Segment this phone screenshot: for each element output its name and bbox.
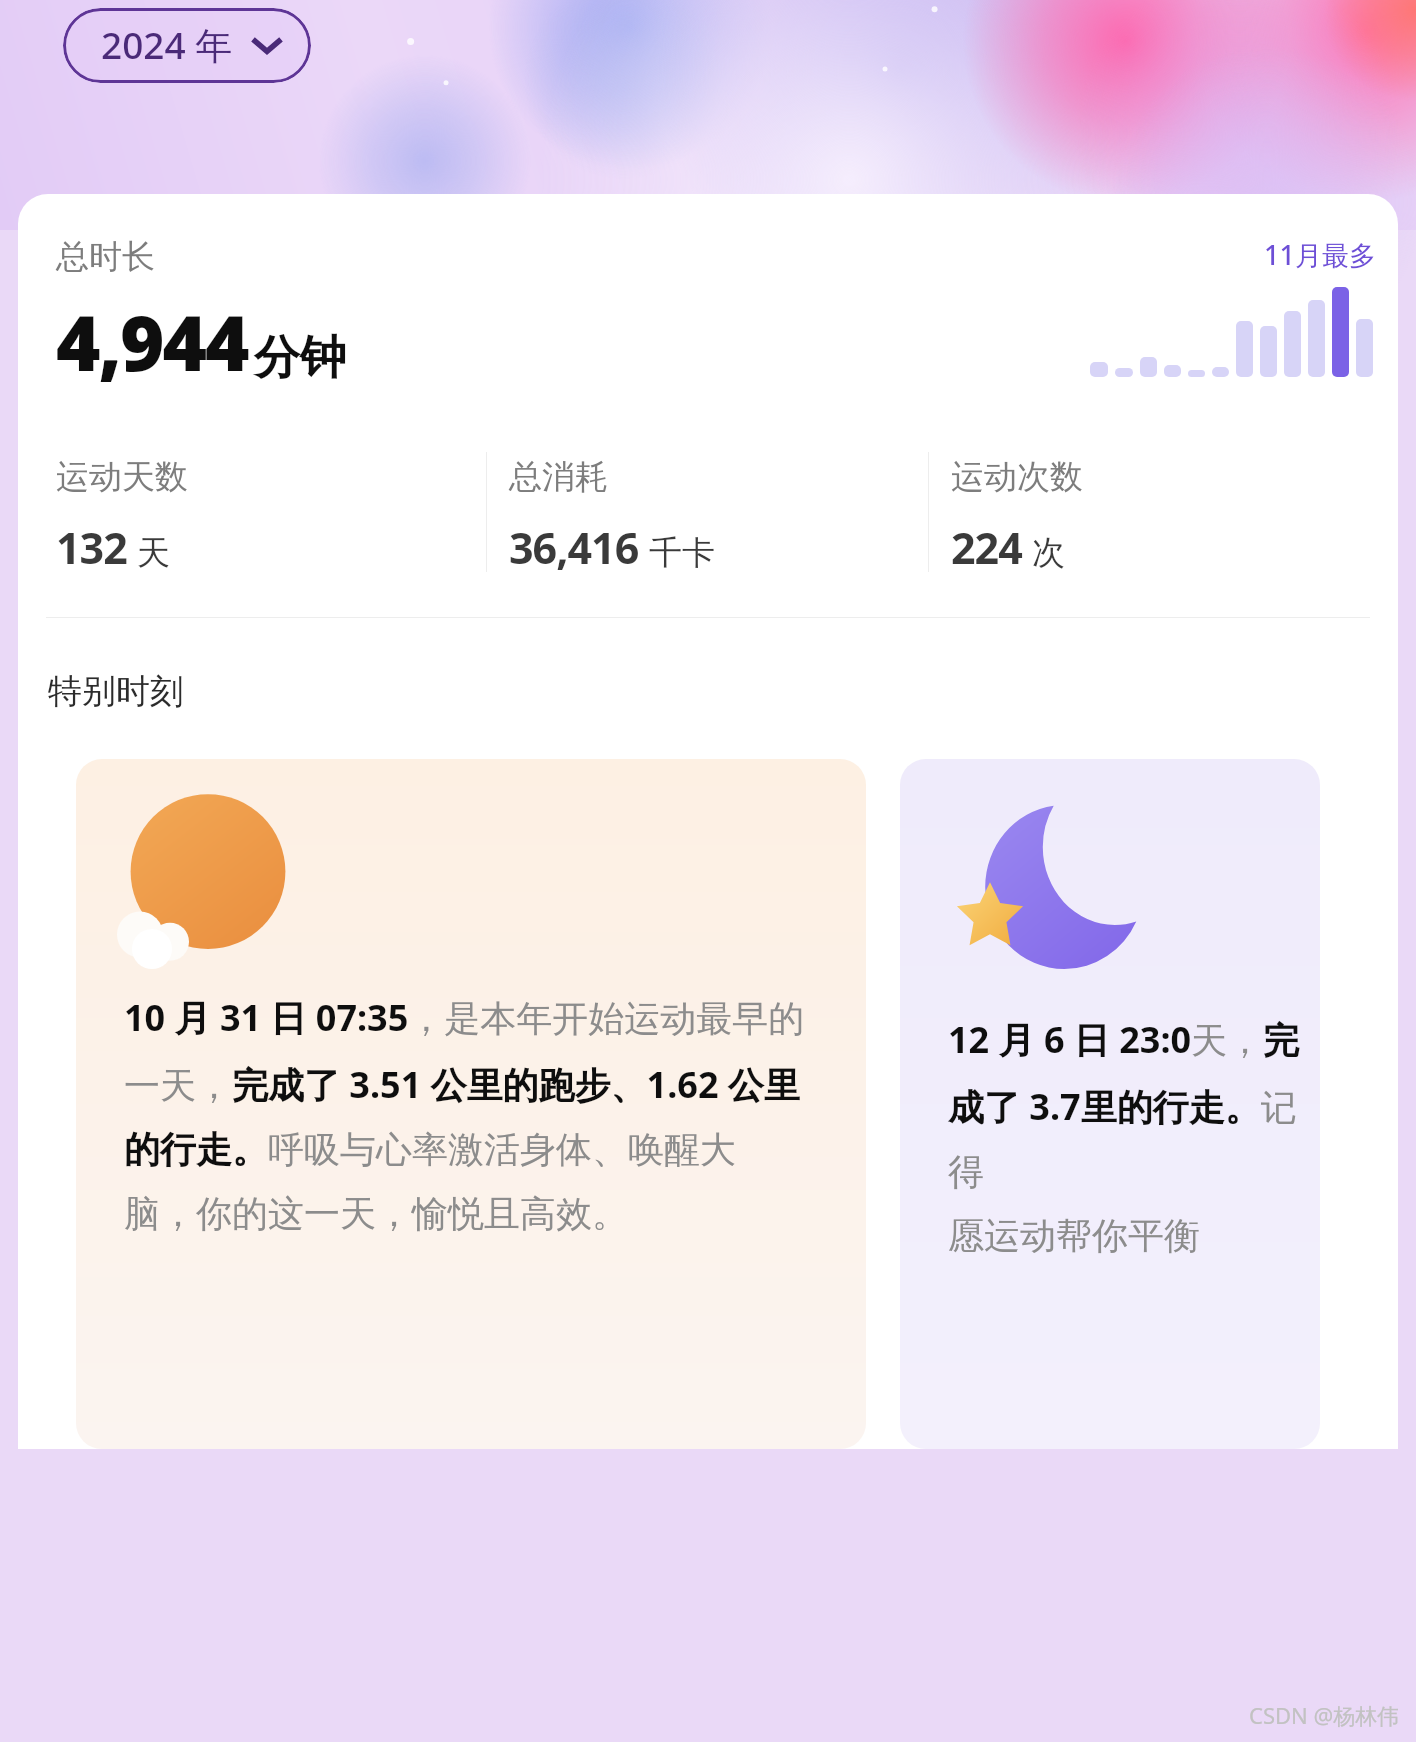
staticText: 天 <box>137 532 170 574</box>
staticText: 10 月 31 日 07:35，是本年开始运动最早的一天，完成了 3.51 公里… <box>124 993 806 1236</box>
staticText: 224 <box>951 518 1022 577</box>
staticText: 分钟 <box>254 329 346 387</box>
staticText: 运动天数 <box>56 456 188 498</box>
staticText: 36,416 <box>509 518 639 577</box>
staticText: 千卡 <box>649 532 715 574</box>
button[interactable]: 运动天数 <box>46 452 486 577</box>
button[interactable]: 10 月 31 日 07:35，是本年开始运动最早的一天，完成了 3.51 公里… <box>76 759 866 1449</box>
staticText: 12 月 6 日 23:0天，完成了 3.7里的行走。记得 愿运动帮你平衡 <box>948 1015 1320 1258</box>
staticText: 总时长 <box>56 236 155 278</box>
staticText: 运动次数 <box>951 456 1083 498</box>
button[interactable]: 总消耗 <box>487 452 928 577</box>
staticText: CSDN @杨林伟 <box>1249 1700 1400 1730</box>
button[interactable]: 2024 年 <box>63 8 311 83</box>
staticText: 4,944 <box>56 290 248 394</box>
staticText: 2024 年 <box>101 19 233 70</box>
staticText: 11月最多 <box>1264 236 1376 273</box>
staticText: 特别时刻 <box>48 670 184 713</box>
button[interactable]: 12 月 6 日 23:0天，完成了 3.7里的行走。记得 愿运动帮你平衡 <box>900 759 1320 1449</box>
button[interactable]: 运动次数 <box>929 452 1370 577</box>
staticText: 次 <box>1032 532 1065 574</box>
staticText: 132 <box>56 518 127 577</box>
staticText: 总消耗 <box>509 456 608 498</box>
